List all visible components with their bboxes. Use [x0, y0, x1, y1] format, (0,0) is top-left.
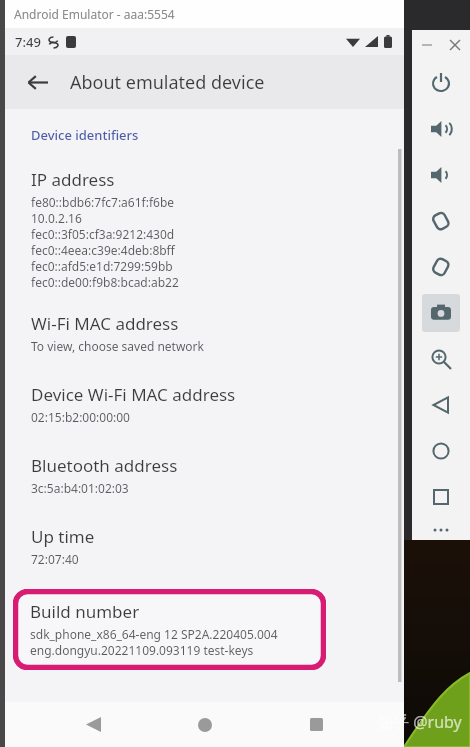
button[interactable]: Up time [5, 525, 404, 567]
button[interactable]: Recents [293, 702, 339, 747]
button[interactable]: Device Wi-Fi MAC address [5, 383, 404, 425]
staticText: fec0::3f05:cf3a:9212:430d [31, 226, 175, 242]
staticText: 知乎 @ruby [377, 711, 462, 733]
button[interactable]: Back [17, 62, 57, 102]
button[interactable]: Wi-Fi MAC address [5, 312, 404, 354]
staticText: eng.dongyu.20221109.093119 test-keys [30, 642, 254, 658]
staticText: sdk_phone_x86_64-eng 12 SP2A.220405.004 [30, 626, 278, 642]
button[interactable]: Close [443, 33, 467, 57]
button[interactable]: Volume down [422, 156, 460, 194]
staticText: Android Emulator - aaa:5554 [14, 6, 175, 22]
staticText: Build number [30, 600, 140, 623]
staticText: To view, choose saved network [31, 338, 204, 354]
staticText: Up time [31, 525, 95, 548]
staticText: Bluetooth address [31, 454, 178, 477]
button[interactable]: Bluetooth address [5, 454, 404, 496]
staticText: fe80::bdb6:7fc7:a61f:f6be [31, 194, 175, 210]
button[interactable]: Rotate left [422, 202, 460, 240]
staticText: Wi-Fi MAC address [31, 312, 179, 335]
staticText: Device Wi-Fi MAC address [31, 383, 236, 406]
staticText: 3c:5a:b4:01:02:03 [31, 480, 129, 496]
button[interactable]: Back [422, 386, 460, 424]
staticText: fec0::4eea:c39e:4deb:8bff [31, 242, 175, 258]
button[interactable]: Power [422, 64, 460, 102]
button[interactable]: Volume up [422, 110, 460, 148]
button[interactable]: IP address [5, 168, 404, 290]
button[interactable]: Overview [422, 478, 460, 516]
button[interactable]: Back [70, 702, 116, 747]
staticText: IP address [31, 168, 115, 191]
button[interactable]: Home [182, 702, 228, 747]
button[interactable]: Device identifiers [31, 126, 139, 144]
staticText: About emulated device [70, 70, 265, 95]
staticText: fec0::de00:f9b8:bcad:ab22 [31, 274, 179, 290]
button[interactable]: Home [422, 432, 460, 470]
staticText: fec0::afd5:e1d:7299:59bb [31, 258, 173, 274]
staticText: 02:15:b2:00:00:00 [31, 409, 130, 425]
button[interactable]: Zoom [422, 340, 460, 378]
button[interactable]: Rotate right [422, 248, 460, 286]
button[interactable]: Minimize [415, 33, 439, 57]
staticText: 10.0.2.16 [31, 210, 82, 226]
button[interactable]: More [422, 524, 460, 536]
staticText: 7:49 [15, 33, 41, 51]
button[interactable]: Build number [13, 589, 326, 670]
staticText: 72:07:40 [31, 551, 79, 567]
button[interactable]: Screenshot [422, 294, 460, 332]
